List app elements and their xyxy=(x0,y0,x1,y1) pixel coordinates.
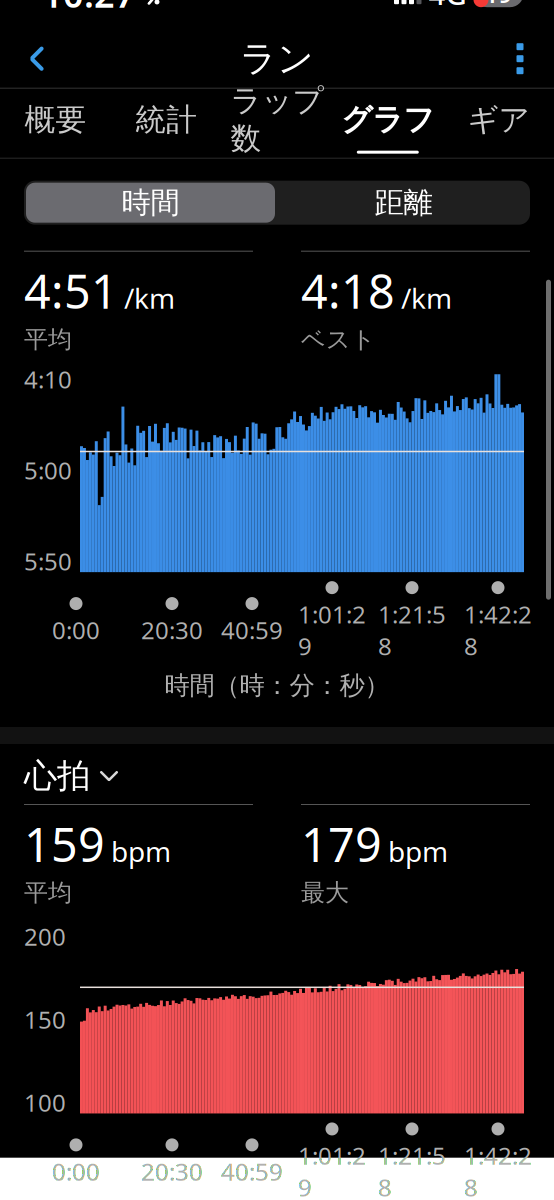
staticText: 0:00 xyxy=(52,614,100,646)
button[interactable]: ラップ数 xyxy=(222,89,332,158)
staticText: 1:42:28 xyxy=(464,598,532,662)
staticText: 平均 xyxy=(24,878,72,907)
staticText: 200 xyxy=(24,920,66,952)
staticText: 1:21:58 xyxy=(378,1139,446,1200)
staticText: 4:18 xyxy=(301,260,395,322)
button[interactable]: ギア xyxy=(443,89,554,158)
button[interactable]: 戻る xyxy=(6,30,68,88)
button[interactable]: 距離 xyxy=(277,181,530,225)
staticText: 40:59 xyxy=(221,1155,283,1187)
staticText: 19 xyxy=(484,0,512,10)
staticText: ラップ数 xyxy=(230,82,323,157)
staticText: 20:30 xyxy=(141,614,203,646)
button[interactable]: 時間 xyxy=(24,181,277,225)
button[interactable]: 心拍 xyxy=(0,752,554,800)
staticText: 1:21:58 xyxy=(378,598,446,662)
staticText: 10:27 xyxy=(42,0,136,18)
button[interactable]: グラフ xyxy=(332,89,443,158)
staticText: 0:00 xyxy=(52,1155,100,1187)
staticText: 100 xyxy=(24,1086,66,1118)
staticText: 平均 xyxy=(24,325,72,354)
button[interactable]: 概要 xyxy=(0,89,111,158)
staticText: 心拍 xyxy=(24,755,90,796)
button[interactable]: 統計 xyxy=(111,89,222,158)
staticText: 1:42:28 xyxy=(464,1139,532,1200)
staticText: グラフ xyxy=(341,101,434,139)
staticText: 179 xyxy=(301,813,382,875)
staticText: 1:01:29 xyxy=(298,598,366,662)
staticText: 時間 xyxy=(121,185,179,221)
staticText: 4:10 xyxy=(24,363,72,395)
staticText: ギア xyxy=(468,101,530,139)
staticText: 統計 xyxy=(135,101,197,139)
staticText: 20:30 xyxy=(141,1155,203,1187)
staticText: ベスト xyxy=(301,325,376,354)
staticText: 最大 xyxy=(301,878,349,907)
staticText: 159 xyxy=(24,813,105,875)
staticText: /km xyxy=(401,279,452,316)
staticText: 5:50 xyxy=(24,545,72,577)
button[interactable]: その他のオプション xyxy=(492,30,548,88)
staticText: 4:51 xyxy=(24,260,118,322)
staticText: /km xyxy=(124,279,175,316)
staticText: ラン xyxy=(240,37,314,81)
staticText: 5:00 xyxy=(24,454,72,486)
staticText: 1:01:29 xyxy=(298,1139,366,1200)
staticText: bpm xyxy=(111,833,171,870)
staticText: 40:59 xyxy=(221,614,283,646)
staticText: 時間（時：分：秒） xyxy=(164,670,389,701)
staticText: bpm xyxy=(388,833,448,870)
staticText: 概要 xyxy=(24,101,86,139)
staticText: 4G xyxy=(428,0,466,13)
staticText: 150 xyxy=(24,1003,66,1035)
staticText: 距離 xyxy=(374,185,432,221)
